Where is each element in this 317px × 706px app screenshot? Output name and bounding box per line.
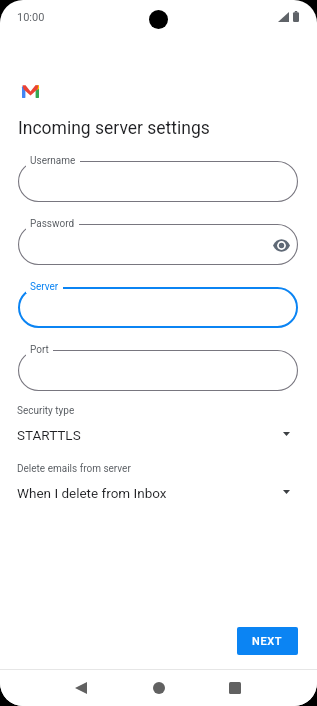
button[interactable]: Home <box>120 670 198 706</box>
button[interactable]: Server <box>18 287 298 328</box>
staticText: STARTTLS <box>17 427 81 443</box>
button[interactable]: Show password <box>268 232 294 258</box>
staticText: Port <box>30 344 49 356</box>
button[interactable]: Port <box>18 350 298 391</box>
staticText: Delete emails from server <box>17 463 131 475</box>
button[interactable]: Username <box>18 161 298 202</box>
staticText: When I delete from Inbox <box>17 485 167 501</box>
staticText: 10:00 <box>17 11 45 24</box>
staticText: Password <box>30 218 75 230</box>
button[interactable]: Password <box>18 224 298 265</box>
staticText: Incoming server settings <box>18 118 210 139</box>
button[interactable]: NEXT <box>237 627 298 655</box>
staticText: Server <box>30 281 59 293</box>
staticText: Security type <box>17 405 75 417</box>
button[interactable]: Delete emails from server <box>0 458 317 502</box>
staticText: NEXT <box>252 635 283 648</box>
button[interactable]: Recent apps <box>196 670 274 706</box>
button[interactable]: Back <box>42 670 120 706</box>
staticText: Username <box>30 155 76 167</box>
button[interactable]: Security type <box>0 400 317 444</box>
